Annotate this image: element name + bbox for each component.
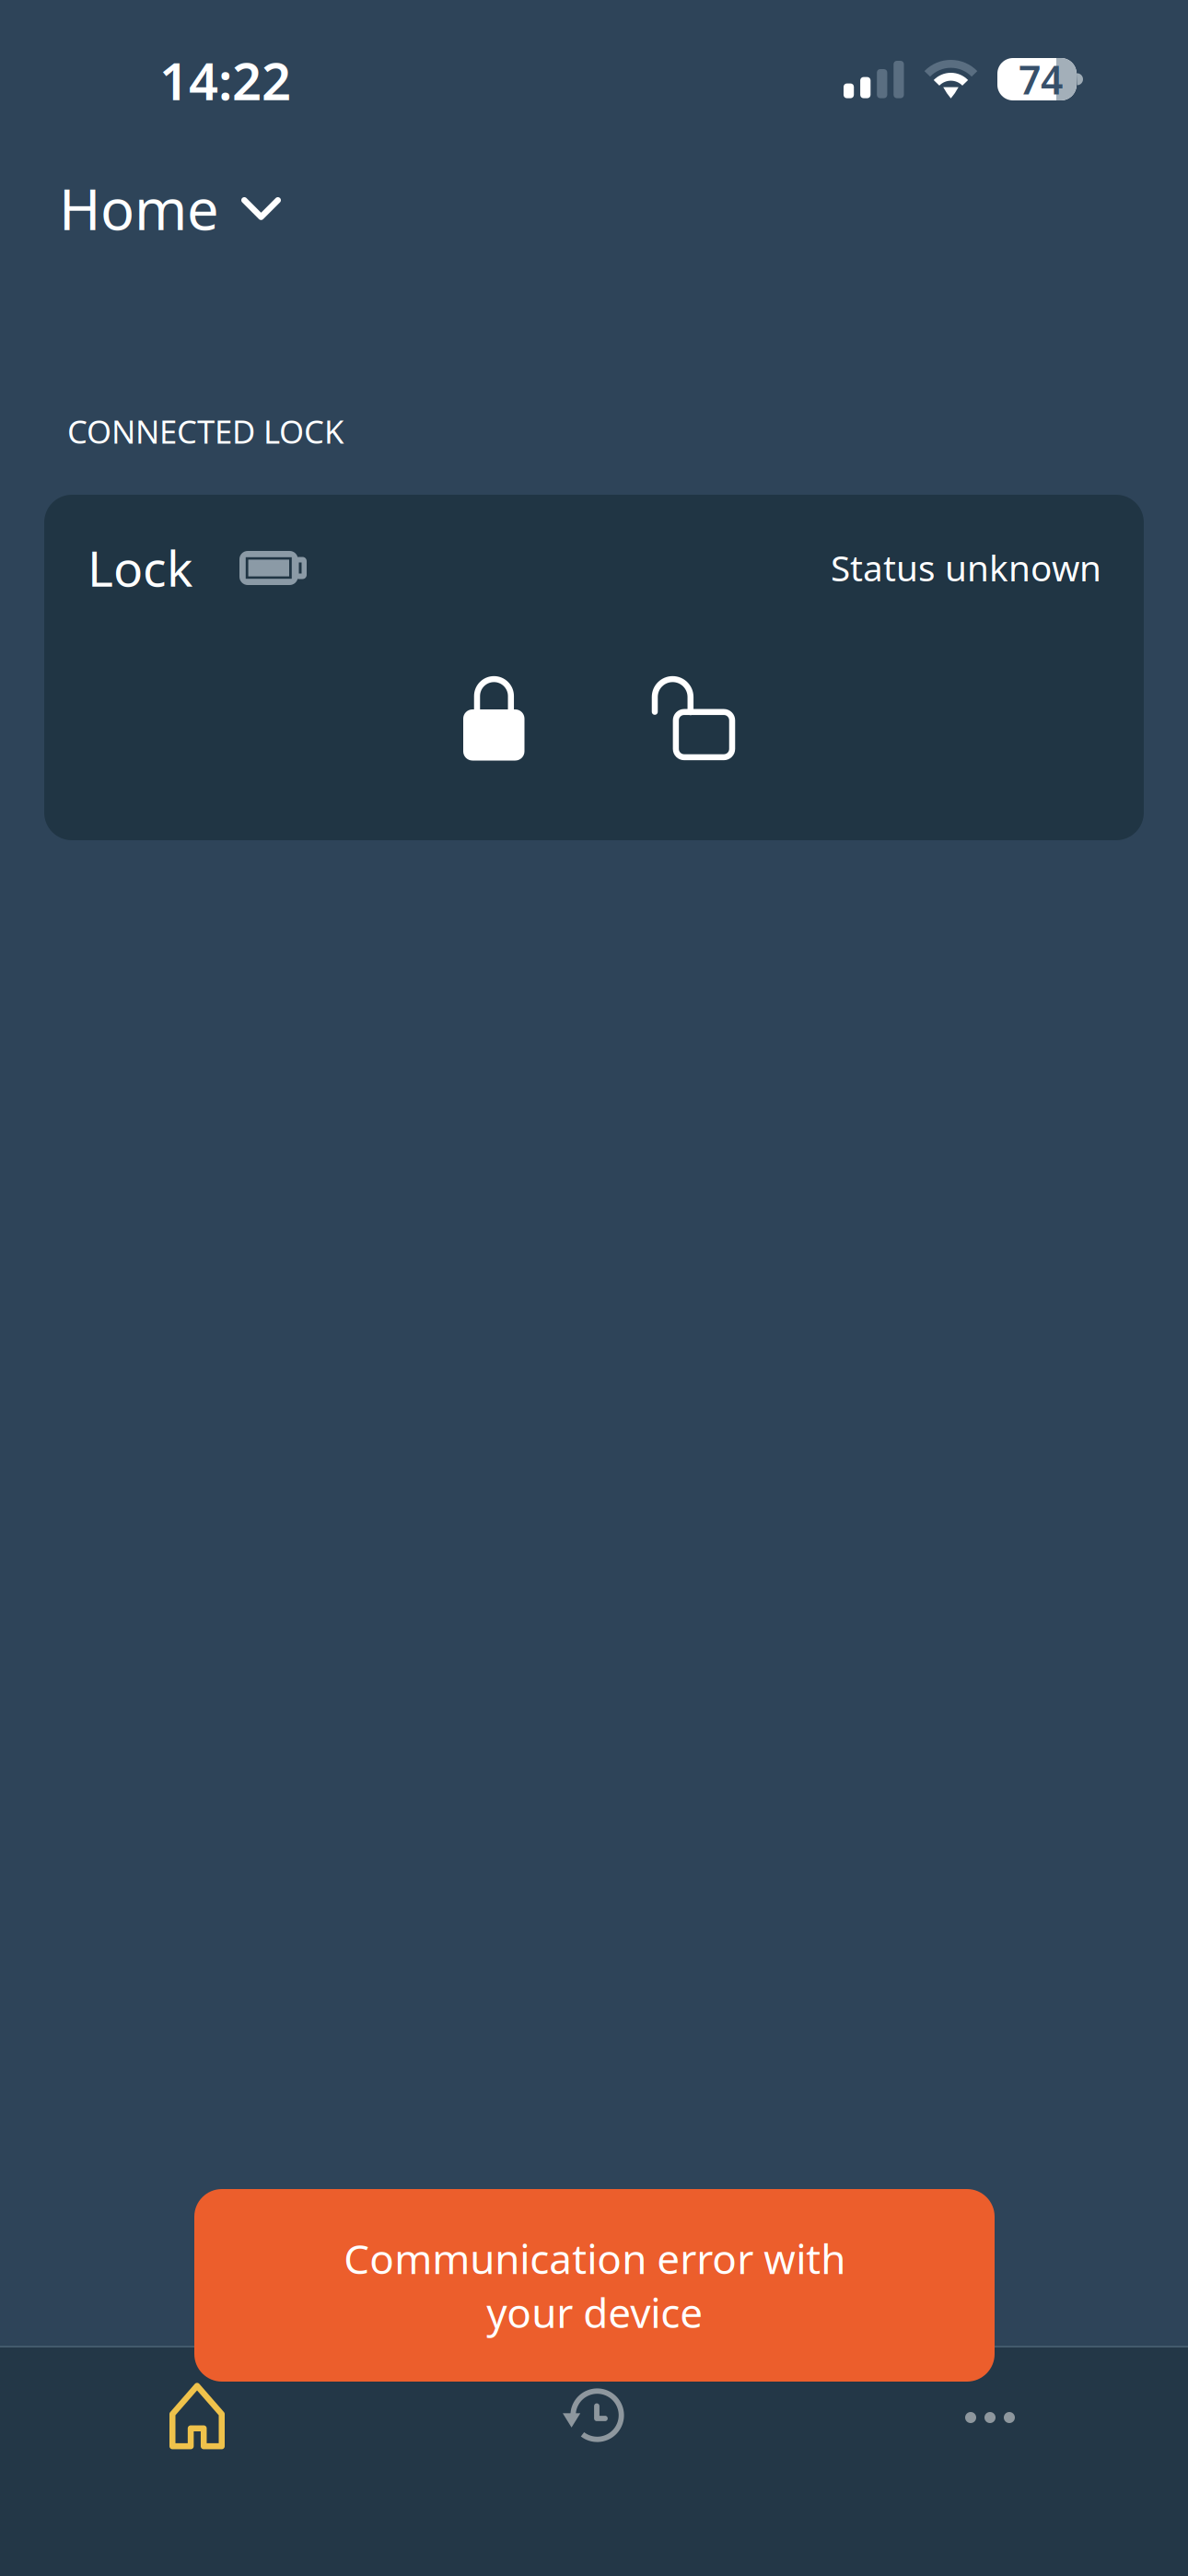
button[interactable]: Lock: [439, 660, 550, 778]
button[interactable]: More: [792, 2348, 1188, 2486]
button[interactable]: Unlock: [638, 660, 749, 778]
staticText: 74: [1019, 53, 1063, 105]
staticText: 14:22: [159, 46, 291, 114]
staticText: Status unknown: [831, 544, 1101, 591]
button[interactable]: Home: [0, 2348, 396, 2486]
staticText: Communication error with your device: [344, 2232, 845, 2339]
staticText: CONNECTED LOCK: [67, 410, 344, 452]
button[interactable]: Home: [59, 178, 285, 239]
staticText: Lock: [87, 535, 192, 600]
button[interactable]: History: [396, 2348, 792, 2486]
staticText: Home: [59, 171, 219, 246]
